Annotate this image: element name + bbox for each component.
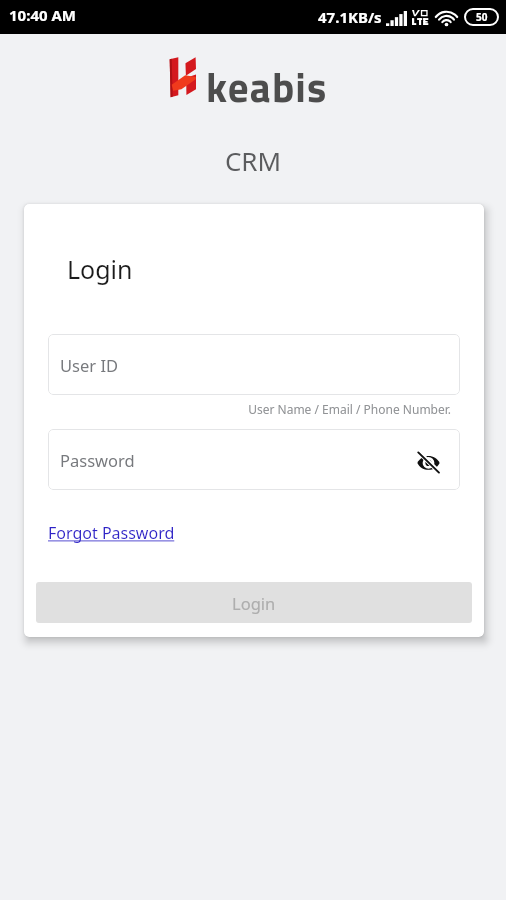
button[interactable]: Forgot Password [48,522,175,544]
staticText: Forgot Password [48,522,175,544]
staticText: 10:40 AM [9,5,76,25]
staticText: 47.1KB/s [318,7,382,27]
button[interactable]: User ID [48,334,460,395]
staticText: User Name / Email / Phone Number. [48,401,451,417]
staticText: 50 [476,10,488,24]
staticText: CRM [0,143,506,178]
staticText: User ID [60,354,119,376]
button[interactable]: Password [48,429,460,490]
staticText: Login [67,252,133,286]
button[interactable]: Show password [413,447,443,477]
staticText: Login [232,592,276,614]
button[interactable]: Login [36,582,472,623]
staticText: Password [60,449,135,471]
staticText: keabis [206,56,328,118]
